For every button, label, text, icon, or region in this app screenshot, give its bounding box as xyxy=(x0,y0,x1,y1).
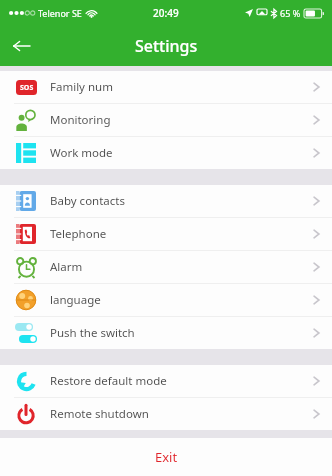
staticText: Alarm xyxy=(50,259,83,275)
button[interactable]: Baby contacts xyxy=(0,185,332,217)
button[interactable]: SOS xyxy=(0,71,332,103)
staticText: Push the switch xyxy=(50,325,135,341)
button[interactable]: Back xyxy=(0,26,42,66)
staticText: Telenor SE xyxy=(38,7,82,19)
staticText: Baby contacts xyxy=(50,193,125,209)
staticText: 20:49 xyxy=(153,6,179,20)
staticText: Restore default mode xyxy=(50,373,167,389)
staticText: 65 % xyxy=(280,7,301,19)
button[interactable]: Push the switch xyxy=(0,317,332,349)
staticText: Monitoring xyxy=(50,112,111,128)
staticText: SOS xyxy=(20,83,34,93)
button[interactable]: Restore default mode xyxy=(0,365,332,397)
staticText: Work mode xyxy=(50,145,113,161)
staticText: Remote shutdown xyxy=(50,406,149,422)
staticText: Exit xyxy=(155,448,178,466)
button[interactable]: language xyxy=(0,284,332,316)
button[interactable]: Work mode xyxy=(0,137,332,169)
button[interactable]: Monitoring xyxy=(0,104,332,136)
staticText: language xyxy=(50,292,101,308)
button[interactable]: Alarm xyxy=(0,251,332,283)
button[interactable]: Remote shutdown xyxy=(0,398,332,430)
staticText: Telephone xyxy=(50,226,107,242)
staticText: Settings xyxy=(135,35,198,57)
button[interactable]: Exit xyxy=(0,438,332,476)
staticText: Family num xyxy=(50,79,113,95)
button[interactable]: Telephone xyxy=(0,218,332,250)
